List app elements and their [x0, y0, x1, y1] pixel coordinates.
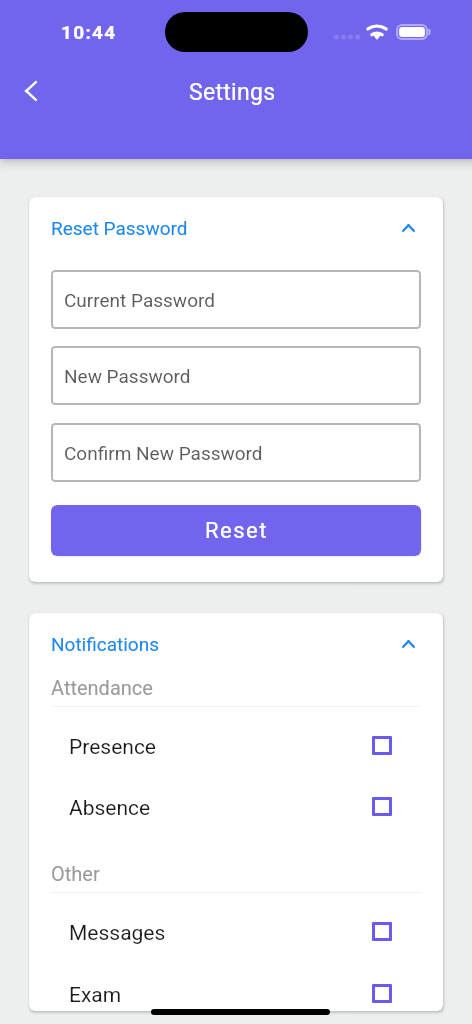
staticText: Current Password	[64, 289, 215, 311]
staticText: New Password	[64, 365, 191, 387]
staticText: Other	[51, 862, 100, 885]
staticText: Exam	[69, 983, 122, 1008]
button[interactable]: Exam	[29, 968, 443, 1011]
button[interactable]: Absence	[29, 781, 443, 833]
staticText: Notifications	[51, 633, 160, 655]
button[interactable]	[29, 197, 443, 255]
button[interactable]: Presence	[29, 720, 443, 772]
staticText: Messages	[69, 921, 166, 946]
staticText: Absence	[69, 796, 151, 821]
staticText: Reset Password	[51, 217, 188, 239]
staticText: Settings	[189, 79, 276, 106]
button[interactable]: Confirm New Password	[51, 423, 421, 482]
button[interactable]	[29, 613, 443, 671]
button[interactable]: Current Password	[51, 270, 421, 329]
staticText: Confirm New Password	[64, 442, 263, 464]
staticText: 10:44	[61, 21, 117, 43]
button[interactable]: Back	[11, 71, 51, 111]
staticText: Reset	[205, 518, 268, 544]
button[interactable]: New Password	[51, 346, 421, 405]
button[interactable]: Reset	[51, 505, 421, 556]
staticText: Attendance	[51, 676, 153, 699]
button[interactable]: Messages	[29, 906, 443, 958]
staticText: Presence	[69, 735, 157, 760]
